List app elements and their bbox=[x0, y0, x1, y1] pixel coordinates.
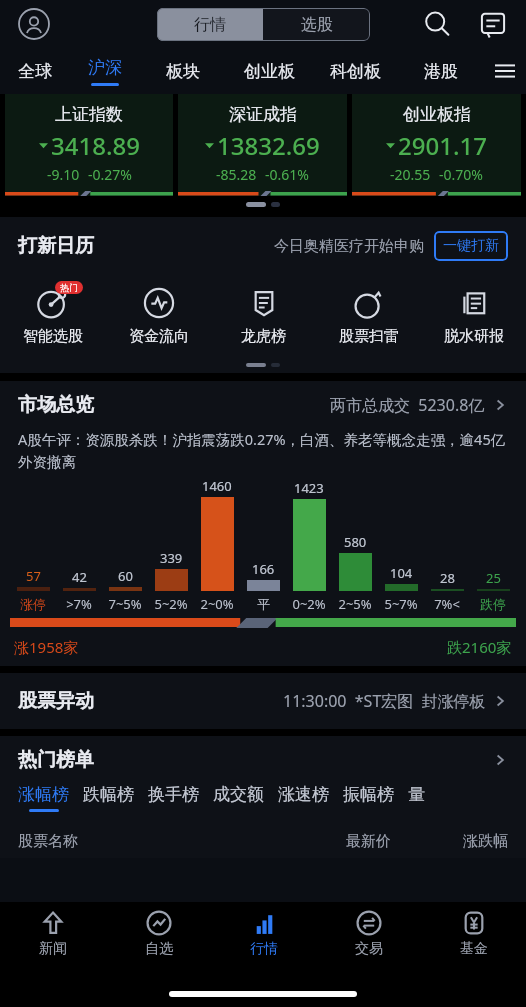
staticText: 涨幅榜 bbox=[18, 784, 69, 805]
staticText: 热门 bbox=[60, 282, 78, 293]
staticText: 成交额 bbox=[213, 784, 264, 805]
button[interactable]: 自选 bbox=[106, 902, 211, 970]
button[interactable]: 资金流向 bbox=[106, 275, 211, 363]
button[interactable]: 涨速榜 bbox=[278, 784, 343, 805]
staticText: 166 bbox=[252, 560, 275, 578]
button[interactable]: 选股 bbox=[263, 8, 370, 41]
staticText: 行情 bbox=[194, 15, 226, 35]
staticText: -0.27% bbox=[88, 165, 132, 184]
staticText: 339 bbox=[160, 549, 183, 567]
staticText: 股票扫雷 bbox=[339, 327, 399, 346]
button[interactable]: 行情 bbox=[157, 8, 263, 41]
button[interactable]: 热门榜单 bbox=[0, 736, 526, 784]
staticText: 基金 bbox=[460, 940, 488, 958]
staticText: 涨跌幅 bbox=[463, 832, 508, 851]
button[interactable]: Profile bbox=[18, 8, 50, 40]
staticText: 1460 bbox=[202, 477, 232, 495]
button[interactable]: More tabs bbox=[484, 48, 526, 94]
staticText: >7% bbox=[66, 595, 92, 613]
button[interactable]: 热门 bbox=[0, 275, 106, 363]
staticText: 科创板 bbox=[330, 61, 381, 82]
staticText: 最新价 bbox=[346, 832, 391, 851]
button[interactable]: 量 bbox=[408, 784, 439, 805]
staticText: 龙虎榜 bbox=[241, 327, 286, 346]
button[interactable]: 市场总览 bbox=[0, 381, 526, 429]
staticText: 11:30:00 *ST宏图 封涨停板 bbox=[283, 690, 486, 712]
staticText: 7%< bbox=[434, 595, 460, 613]
staticText: 57 bbox=[26, 567, 41, 585]
staticText: 104 bbox=[390, 564, 413, 582]
button[interactable]: 行情 bbox=[211, 902, 316, 970]
button[interactable]: 涨幅榜 bbox=[18, 784, 83, 812]
staticText: 25 bbox=[486, 569, 501, 587]
staticText: A股午评：资源股杀跌！沪指震荡跌0.27%，白酒、养老等概念走强，逾45亿外资撤… bbox=[18, 429, 508, 471]
staticText: 行情 bbox=[250, 940, 278, 958]
button[interactable]: 沪深 bbox=[70, 48, 140, 94]
staticText: 7~5% bbox=[108, 595, 142, 613]
staticText: 选股 bbox=[301, 15, 333, 35]
staticText: 脱水研报 bbox=[444, 327, 504, 346]
staticText: 平 bbox=[257, 596, 270, 612]
staticText: 上证指数 bbox=[55, 104, 123, 125]
button[interactable]: 港股 bbox=[398, 48, 484, 94]
staticText: 5~7% bbox=[384, 595, 418, 613]
button[interactable]: 创业板 bbox=[226, 48, 312, 94]
staticText: 资金流向 bbox=[129, 327, 189, 346]
staticText: -85.28 bbox=[216, 165, 257, 184]
button[interactable]: 跌幅榜 bbox=[83, 784, 148, 805]
button[interactable]: 板块 bbox=[140, 48, 226, 94]
staticText: 跌幅榜 bbox=[83, 784, 134, 805]
button[interactable]: 新闻 bbox=[0, 902, 106, 970]
staticText: 两市总成交 5230.8亿 bbox=[330, 394, 485, 416]
staticText: 跌停 bbox=[480, 596, 506, 612]
button[interactable]: 振幅榜 bbox=[343, 784, 408, 805]
staticText: 港股 bbox=[424, 61, 458, 82]
button[interactable]: Search bbox=[422, 9, 452, 39]
staticText: 5~2% bbox=[154, 595, 188, 613]
staticText: -0.70% bbox=[439, 165, 483, 184]
button[interactable]: 一键打新 bbox=[434, 231, 508, 261]
staticText: 股票名称 bbox=[18, 832, 78, 851]
staticText: 1423 bbox=[294, 479, 324, 497]
staticText: 股票异动 bbox=[18, 689, 94, 713]
staticText: 2~0% bbox=[200, 595, 234, 613]
staticText: 2~5% bbox=[338, 595, 372, 613]
staticText: 热门榜单 bbox=[18, 748, 94, 772]
staticText: 0~2% bbox=[292, 595, 326, 613]
staticText: 换手榜 bbox=[148, 784, 199, 805]
staticText: -0.61% bbox=[265, 165, 309, 184]
button[interactable]: 基金 bbox=[421, 902, 526, 970]
staticText: 涨1958家 bbox=[14, 637, 79, 657]
staticText: 沪深 bbox=[88, 57, 122, 78]
staticText: 跌2160家 bbox=[447, 637, 512, 657]
staticText: 2901.17 bbox=[398, 129, 487, 162]
staticText: 振幅榜 bbox=[343, 784, 394, 805]
staticText: 板块 bbox=[166, 61, 200, 82]
button[interactable]: 科创板 bbox=[312, 48, 398, 94]
button[interactable]: 交易 bbox=[316, 902, 421, 970]
staticText: 智能选股 bbox=[23, 327, 83, 346]
button[interactable]: 脱水研报 bbox=[421, 275, 526, 363]
staticText: 深证成指 bbox=[229, 104, 297, 125]
staticText: 今日奥精医疗开始申购 bbox=[274, 237, 424, 256]
staticText: -9.10 bbox=[47, 165, 80, 184]
staticText: -20.55 bbox=[390, 165, 431, 184]
staticText: 涨速榜 bbox=[278, 784, 329, 805]
staticText: 创业板 bbox=[244, 61, 295, 82]
staticText: 涨停 bbox=[20, 596, 46, 612]
staticText: 打新日历 bbox=[18, 234, 94, 258]
staticText: 市场总览 bbox=[18, 393, 94, 417]
button[interactable]: 全球 bbox=[0, 48, 70, 94]
staticText: 全球 bbox=[18, 61, 52, 82]
staticText: 580 bbox=[344, 533, 367, 551]
button[interactable]: 股票扫雷 bbox=[316, 275, 421, 363]
button[interactable]: 成交额 bbox=[213, 784, 278, 805]
button[interactable]: 龙虎榜 bbox=[211, 275, 316, 363]
button[interactable]: 股票异动 bbox=[0, 673, 526, 729]
button[interactable]: Messages bbox=[478, 9, 508, 39]
staticText: 创业板指 bbox=[403, 104, 471, 125]
staticText: 自选 bbox=[145, 940, 173, 958]
button[interactable]: 打新日历 bbox=[0, 217, 526, 275]
button[interactable]: 换手榜 bbox=[148, 784, 213, 805]
staticText: 42 bbox=[72, 568, 87, 586]
